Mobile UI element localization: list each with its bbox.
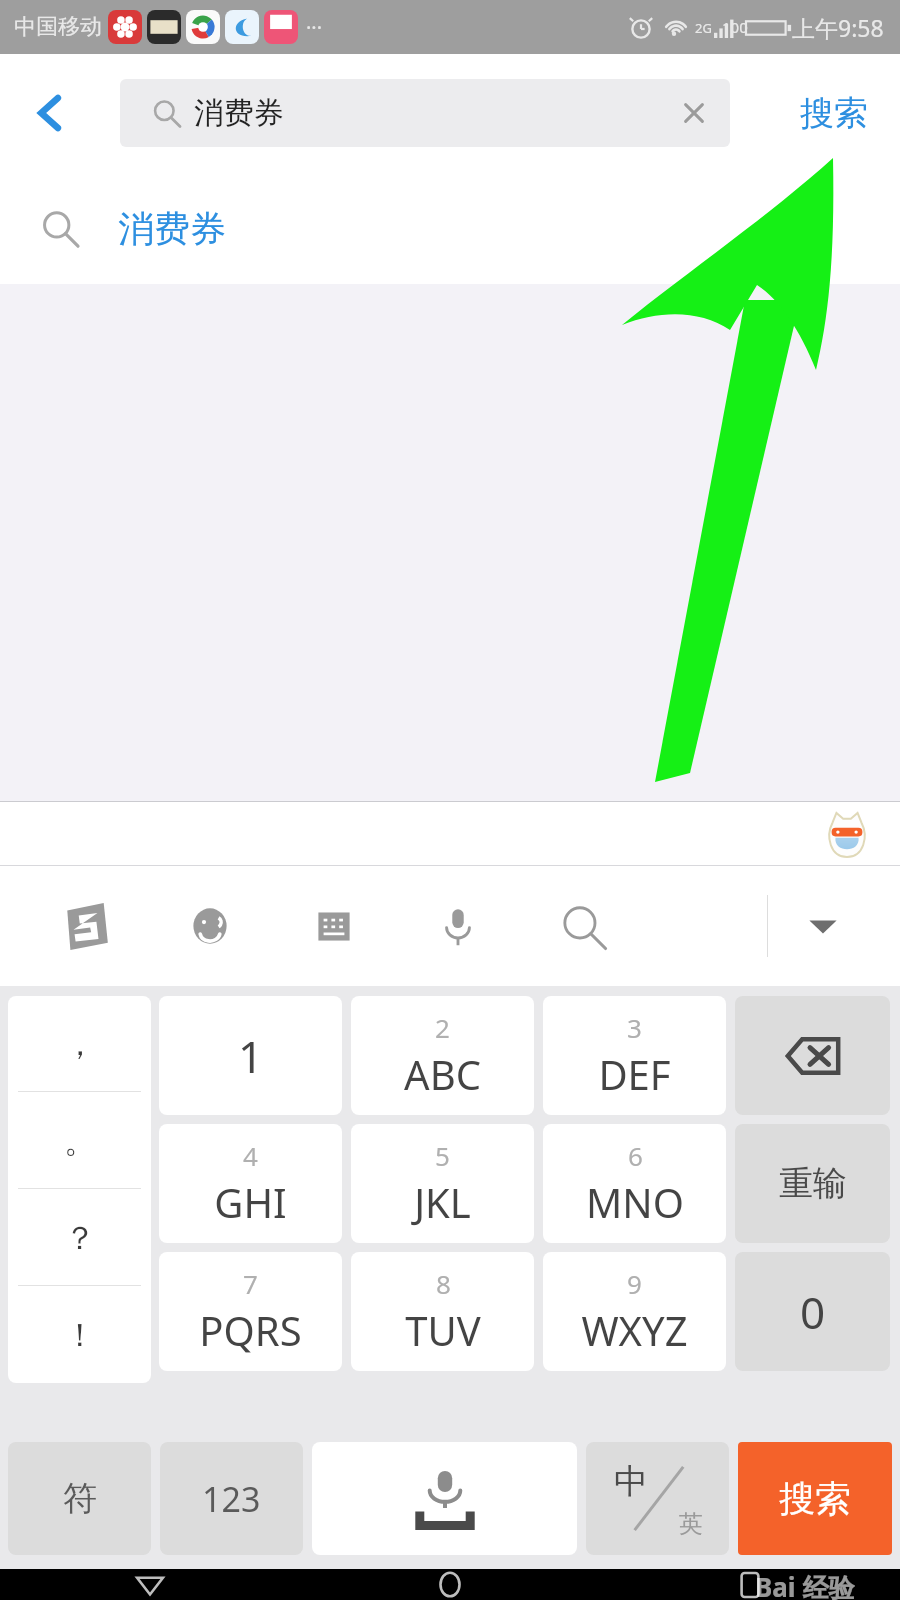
staticText: PQRS <box>199 1303 302 1357</box>
staticText: ？ <box>64 1218 96 1258</box>
button[interactable]: 3 <box>543 996 726 1115</box>
staticText: GHI <box>214 1175 287 1229</box>
button[interactable]: Search <box>520 866 644 986</box>
staticText: 9 <box>627 1266 642 1301</box>
staticText: 重输 <box>779 1162 847 1205</box>
staticText: 123 <box>202 1476 261 1522</box>
button[interactable]: 1 <box>159 996 342 1115</box>
button[interactable]: 9 <box>543 1252 726 1371</box>
button[interactable]: Space <box>312 1442 577 1555</box>
staticText: 英 <box>679 1509 703 1539</box>
button[interactable]: 0 <box>735 1252 890 1371</box>
button[interactable]: Back <box>0 1569 300 1600</box>
button[interactable]: 4 <box>159 1124 342 1243</box>
staticText: 符 <box>63 1477 97 1520</box>
staticText: 2G <box>695 19 712 37</box>
button[interactable]: Clear <box>666 85 722 141</box>
staticText: MNO <box>586 1175 684 1229</box>
staticText: 4 <box>243 1138 258 1173</box>
staticText: 中 <box>614 1460 648 1503</box>
staticText: WXYZ <box>581 1303 688 1357</box>
staticText: Bai 经验 <box>755 1569 855 1600</box>
staticText: 消费券 <box>194 94 284 132</box>
button[interactable]: 搜索 <box>792 82 876 145</box>
staticText: 中国移动 <box>14 13 102 41</box>
button[interactable]: Backspace <box>735 996 890 1115</box>
staticText: 上午9:58 <box>792 12 884 43</box>
button[interactable]: Recents <box>600 1569 900 1600</box>
staticText: 1 <box>238 1026 264 1086</box>
staticText: JKL <box>414 1175 471 1229</box>
staticText: 3 <box>627 1010 642 1045</box>
button[interactable]: Back <box>22 85 78 141</box>
staticText: 5 <box>435 1138 450 1173</box>
button[interactable]: 123 <box>160 1442 303 1555</box>
staticText: 2 <box>435 1010 450 1045</box>
staticText: 消费券 <box>118 206 226 251</box>
staticText: 。 <box>64 1121 96 1161</box>
button[interactable]: 。 <box>8 1092 151 1189</box>
staticText: 8 <box>436 1266 451 1301</box>
button[interactable]: 消费券 <box>0 172 900 284</box>
staticText: 搜索 <box>800 92 868 135</box>
button[interactable]: Home <box>300 1569 600 1600</box>
button[interactable]: ？ <box>8 1189 151 1286</box>
button[interactable]: 消费券 <box>120 79 730 147</box>
button[interactable]: Hide keyboard <box>788 891 858 961</box>
button[interactable]: 2 <box>351 996 534 1115</box>
button[interactable]: 搜索 <box>738 1442 892 1555</box>
staticText: 0 <box>800 1282 826 1342</box>
button[interactable]: Sogou input <box>24 866 148 986</box>
button[interactable]: 6 <box>543 1124 726 1243</box>
staticText: 100 <box>722 17 748 37</box>
button[interactable]: 7 <box>159 1252 342 1371</box>
button[interactable]: Voice input <box>396 866 520 986</box>
button[interactable]: Input method mascot <box>820 807 874 861</box>
staticText: 6 <box>628 1138 643 1173</box>
staticText: ABC <box>404 1047 481 1101</box>
button[interactable]: ， <box>8 996 151 1092</box>
button[interactable]: Keyboard layout <box>272 866 396 986</box>
button[interactable]: 符 <box>8 1442 151 1555</box>
staticText: ！ <box>64 1315 96 1355</box>
staticText: ··· <box>306 14 323 41</box>
button[interactable]: Emoji <box>148 866 272 986</box>
button[interactable]: ！ <box>8 1286 151 1383</box>
button[interactable]: 8 <box>351 1252 534 1371</box>
button[interactable]: 5 <box>351 1124 534 1243</box>
staticText: DEF <box>598 1047 671 1101</box>
staticText: TUV <box>405 1303 481 1357</box>
staticText: ， <box>64 1024 96 1064</box>
button[interactable]: 重输 <box>735 1124 890 1243</box>
staticText: 7 <box>243 1266 258 1301</box>
button[interactable]: Chinese English toggle <box>586 1442 729 1555</box>
staticText: 搜索 <box>779 1476 851 1521</box>
